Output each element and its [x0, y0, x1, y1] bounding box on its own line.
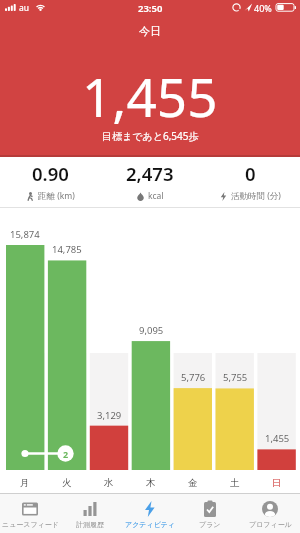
button[interactable]: アクティビティ — [120, 493, 180, 533]
staticText: 土 — [230, 477, 240, 489]
button[interactable]: ニュースフィード — [0, 493, 60, 533]
staticText: 1,455 — [82, 60, 218, 132]
button[interactable]: 0 — [200, 156, 300, 207]
staticText: 木 — [146, 477, 156, 489]
staticText: 金 — [188, 477, 198, 489]
staticText: 火 — [62, 477, 72, 489]
staticText: プラン — [199, 520, 221, 529]
staticText: kcal — [148, 190, 164, 202]
button[interactable]: プラン — [180, 493, 240, 533]
staticText: 3,129 — [97, 409, 122, 422]
staticText: 月 — [20, 477, 30, 489]
staticText: 14,785 — [52, 243, 82, 256]
staticText: 日 — [272, 477, 282, 489]
staticText: ニュースフィード — [2, 520, 59, 529]
staticText: 9,095 — [139, 324, 164, 337]
staticText: 活動時間 (分) — [231, 190, 281, 202]
staticText: 0.90 — [32, 161, 69, 186]
staticText: 5,776 — [181, 371, 206, 384]
staticText: 2 — [63, 448, 69, 460]
staticText: プロフィール — [249, 520, 292, 529]
staticText: 1,455 — [265, 432, 290, 445]
staticText: 目標まであと6,545歩 — [102, 129, 199, 143]
button[interactable]: プロフィール — [240, 493, 300, 533]
staticText: 15,874 — [10, 228, 40, 241]
staticText: 0 — [245, 161, 256, 186]
staticText: 距離 (km) — [38, 190, 75, 202]
button[interactable]: 0.90 — [0, 156, 100, 207]
staticText: 計測履歴 — [76, 520, 104, 529]
staticText: au — [19, 2, 30, 14]
staticText: 40% — [254, 2, 272, 14]
staticText: 今日 — [139, 24, 161, 38]
staticText: アクティビティ — [125, 520, 176, 529]
button[interactable]: au — [19, 2, 30, 14]
staticText: 2,473 — [126, 161, 174, 186]
staticText: 水 — [104, 477, 114, 489]
button[interactable]: 計測履歴 — [60, 493, 120, 533]
staticText: 5,755 — [223, 371, 248, 384]
staticText: 23:50 — [138, 2, 163, 15]
button[interactable]: 2,473 — [100, 156, 200, 207]
